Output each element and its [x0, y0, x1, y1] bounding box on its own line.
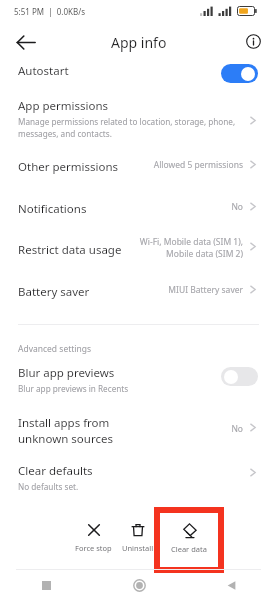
staticText: MIUI Battery saver [168, 284, 243, 296]
button[interactable]: Back [185, 570, 277, 600]
staticText: App info [111, 33, 167, 52]
button[interactable]: Install apps from [0, 412, 215, 434]
button[interactable]: App permissions [0, 95, 215, 117]
button[interactable]: Home [93, 570, 185, 600]
staticText: Autostart [18, 63, 69, 79]
staticText: 5:51 PM | 0.0KB/s [14, 6, 86, 17]
button[interactable]: Clear data highlighted [157, 510, 221, 570]
staticText: messages, and contacts. [18, 128, 112, 139]
button[interactable]: Back [13, 29, 40, 56]
staticText: unknown sources [18, 431, 113, 447]
button[interactable]: Clear data [161, 512, 217, 564]
staticText: Allowed 5 permissions [153, 159, 243, 171]
staticText: Mobile data (SIM 2) [166, 248, 243, 260]
staticText: Clear defaults [18, 463, 93, 479]
staticText: Restrict data usage [18, 242, 122, 258]
button[interactable]: Battery saver [0, 281, 215, 303]
staticText: Force stop [75, 543, 112, 553]
button[interactable]: Recents [0, 570, 93, 600]
button[interactable]: Autostart [0, 60, 215, 82]
staticText: Notifications [18, 201, 87, 217]
staticText: Battery saver [18, 284, 90, 300]
staticText: No [231, 201, 243, 213]
staticText: Wi-Fi, Mobile data (SIM 1), [139, 236, 243, 248]
staticText: App permissions [18, 98, 109, 114]
button[interactable]: unknown sources [0, 428, 215, 450]
button[interactable]: Clear defaults [0, 460, 215, 482]
staticText: Other permissions [18, 159, 119, 175]
staticText: Blur app previews in Recents [18, 383, 129, 394]
button[interactable]: About app [243, 31, 264, 52]
button[interactable]: Blur app previews [0, 362, 215, 384]
staticText: Install apps from [18, 415, 110, 431]
button[interactable]: Blur app previews disabled [221, 367, 258, 386]
staticText: No defaults set. [18, 481, 79, 492]
button[interactable]: Other permissions [0, 156, 215, 178]
button[interactable]: Restrict data usage [0, 239, 215, 261]
button[interactable]: Uninstall [110, 512, 166, 564]
button[interactable]: Force stop [65, 512, 121, 564]
staticText: Uninstall [122, 543, 154, 553]
staticText: Clear data [171, 544, 207, 554]
staticText: Blur app previews [18, 365, 115, 381]
staticText: No [231, 423, 243, 435]
staticText: Manage permissions related to location, … [18, 116, 236, 127]
button[interactable]: Notifications [0, 198, 215, 220]
button[interactable]: Autostart enabled [221, 64, 258, 83]
staticText: Advanced settings [18, 343, 92, 355]
